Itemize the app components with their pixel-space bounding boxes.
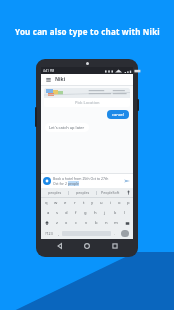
staticText: peoples bbox=[48, 190, 62, 195]
staticText: peoples bbox=[76, 190, 90, 195]
staticText: n bbox=[105, 220, 108, 226]
staticText: Oct for 2 bbox=[53, 181, 68, 186]
staticText: 4:41 PM bbox=[43, 69, 55, 73]
button[interactable]: q bbox=[41, 198, 51, 208]
staticText: p bbox=[127, 200, 130, 206]
button[interactable]: cancel bbox=[107, 110, 129, 119]
button[interactable]: z bbox=[52, 218, 61, 228]
staticText: ?123 bbox=[45, 231, 53, 236]
button[interactable]: r bbox=[70, 198, 79, 208]
button[interactable]: Enter bbox=[121, 230, 129, 237]
button[interactable]: peoples bbox=[41, 188, 68, 197]
button[interactable]: peoples bbox=[69, 188, 96, 197]
button[interactable]: Voice input bbox=[124, 188, 133, 197]
button[interactable]: i bbox=[106, 198, 115, 208]
button[interactable]: g bbox=[80, 208, 90, 218]
staticText: r bbox=[74, 200, 76, 206]
button[interactable]: y bbox=[88, 198, 97, 208]
button[interactable]: f bbox=[71, 208, 80, 218]
button[interactable]: l bbox=[120, 208, 130, 218]
button[interactable]: Pick Location bbox=[44, 88, 130, 107]
button[interactable]: Send bbox=[123, 177, 131, 185]
button[interactable]: u bbox=[97, 198, 106, 208]
staticText: Pick Location bbox=[75, 100, 100, 105]
staticText: o bbox=[118, 200, 121, 206]
staticText: u bbox=[100, 200, 103, 206]
button[interactable]: e bbox=[61, 198, 70, 208]
staticText: b bbox=[95, 220, 98, 226]
staticText: e bbox=[64, 200, 67, 206]
button[interactable]: w bbox=[51, 198, 61, 208]
button[interactable]: v bbox=[81, 218, 91, 228]
staticText: j bbox=[104, 210, 106, 216]
button[interactable]: Menu bbox=[45, 76, 52, 83]
staticText: m bbox=[114, 220, 118, 226]
button[interactable]: m bbox=[111, 218, 121, 228]
staticText: i bbox=[110, 200, 112, 206]
button[interactable]: d bbox=[62, 208, 71, 218]
staticText: a bbox=[47, 210, 50, 216]
staticText: You can also type to chat with Niki bbox=[15, 26, 160, 37]
button[interactable]: PeopleSoft bbox=[97, 188, 124, 197]
staticText: cancel bbox=[112, 112, 124, 117]
button[interactable]: h bbox=[90, 208, 100, 218]
button[interactable]: Home bbox=[83, 242, 91, 250]
button[interactable]: Shift bbox=[41, 218, 52, 228]
staticText: q bbox=[45, 200, 48, 206]
staticText: Book a hotel from 25th Oct to 27th bbox=[53, 176, 109, 181]
staticText: t bbox=[83, 200, 85, 206]
button[interactable]: , bbox=[55, 229, 62, 238]
staticText: people bbox=[68, 181, 79, 186]
button[interactable]: o bbox=[115, 198, 124, 208]
button[interactable]: s bbox=[53, 208, 62, 218]
button[interactable]: c bbox=[71, 218, 81, 228]
button[interactable]: Recents bbox=[111, 242, 119, 250]
staticText: Let's catch up later bbox=[49, 125, 85, 130]
button[interactable]: j bbox=[100, 208, 110, 218]
staticText: . bbox=[114, 231, 115, 236]
staticText: c bbox=[75, 220, 78, 226]
staticText: g bbox=[84, 210, 87, 216]
button[interactable]: Let's catch up later bbox=[45, 123, 89, 132]
staticText: k bbox=[114, 210, 117, 216]
button[interactable]: ?123 bbox=[42, 229, 55, 238]
button[interactable]: Backspace bbox=[121, 218, 133, 228]
staticText: , bbox=[58, 231, 59, 236]
staticText: PeopleSoft bbox=[101, 190, 120, 195]
staticText: x bbox=[65, 220, 68, 226]
staticText: d bbox=[65, 210, 68, 216]
button[interactable]: t bbox=[79, 198, 88, 208]
staticText: h bbox=[94, 210, 97, 216]
button[interactable]: b bbox=[91, 218, 101, 228]
staticText: Niki bbox=[55, 76, 66, 83]
button[interactable]: p bbox=[124, 198, 133, 208]
staticText: f bbox=[75, 210, 77, 216]
button[interactable]: Assistant bbox=[43, 177, 51, 185]
staticText: s bbox=[56, 210, 59, 216]
button[interactable]: x bbox=[61, 218, 71, 228]
button[interactable]: k bbox=[110, 208, 120, 218]
staticText: v bbox=[85, 220, 88, 226]
staticText: w bbox=[54, 200, 58, 206]
staticText: y bbox=[91, 200, 94, 206]
staticText: l bbox=[124, 210, 126, 216]
button[interactable]: n bbox=[101, 218, 111, 228]
button[interactable]: a bbox=[44, 208, 53, 218]
staticText: z bbox=[56, 220, 58, 226]
button[interactable]: Back bbox=[56, 242, 64, 250]
